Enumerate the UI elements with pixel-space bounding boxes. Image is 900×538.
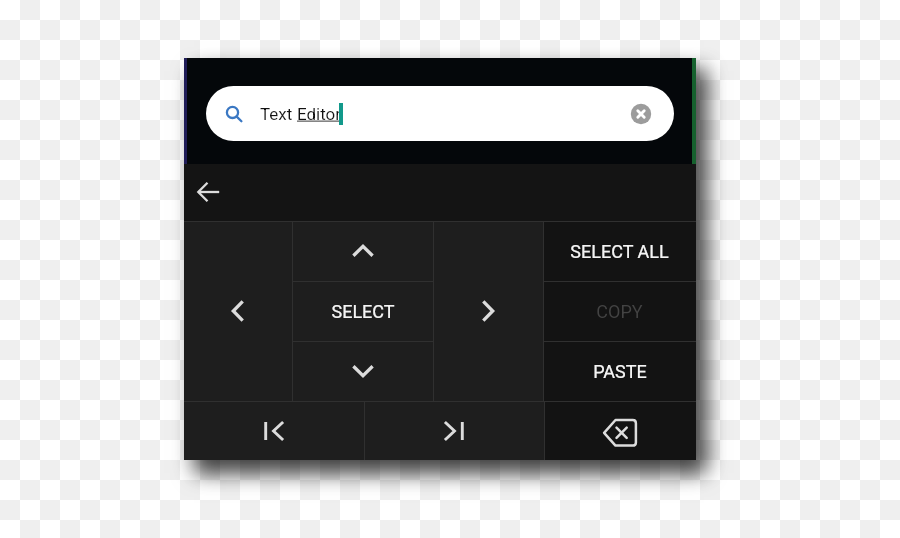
button[interactable]: Move cursor up xyxy=(292,221,433,281)
button[interactable]: Move cursor down xyxy=(292,341,433,401)
button[interactable]: SELECT xyxy=(292,281,433,341)
button[interactable]: Move cursor left xyxy=(184,221,292,401)
button[interactable]: Back xyxy=(189,172,229,212)
button[interactable]: Backspace xyxy=(544,401,696,460)
button[interactable]: COPY xyxy=(543,281,696,341)
button[interactable]: Text xyxy=(206,86,674,141)
staticText: SELECT ALL xyxy=(570,241,669,262)
staticText: Editor xyxy=(297,104,342,124)
staticText: Text xyxy=(260,104,297,124)
button[interactable]: Clear query xyxy=(627,100,655,128)
button[interactable]: Move to end xyxy=(364,401,544,460)
staticText: PASTE xyxy=(593,361,647,382)
button[interactable]: PASTE xyxy=(543,341,696,401)
staticText: SELECT xyxy=(331,301,395,322)
button[interactable]: Move cursor right xyxy=(433,221,543,401)
button[interactable]: Move to start xyxy=(184,401,364,460)
button[interactable]: SELECT ALL xyxy=(543,221,696,281)
staticText: COPY xyxy=(596,301,643,322)
